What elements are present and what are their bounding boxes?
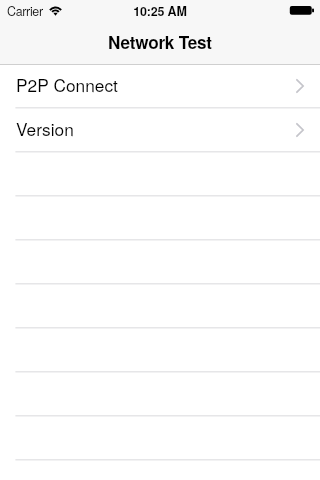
other: Open — [296, 123, 304, 137]
staticText: 10:25 AM — [133, 2, 187, 20]
other: Wi-Fi signal — [49, 6, 62, 16]
staticText: P2P Connect — [16, 72, 118, 97]
staticText: Version — [16, 116, 74, 141]
button[interactable]: P2P Connect — [0, 64, 320, 108]
other: Open — [296, 79, 304, 93]
staticText: Carrier — [7, 2, 43, 20]
staticText: Network Test — [108, 30, 212, 55]
other: Battery full — [289, 4, 315, 16]
button[interactable]: Version — [0, 108, 320, 152]
